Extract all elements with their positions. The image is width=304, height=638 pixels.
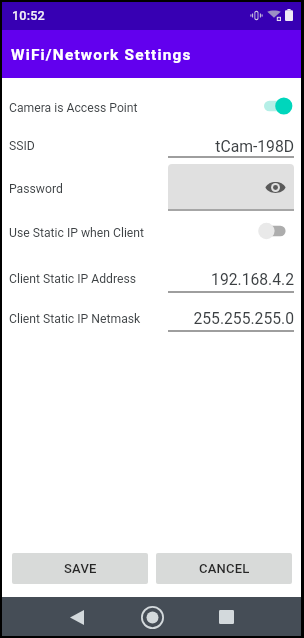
button[interactable]: Use Static IP when Client toggle (258, 219, 290, 243)
staticText: Use Static IP when Client (9, 226, 145, 240)
staticText: 255.255.255.0 (168, 309, 294, 327)
button[interactable]: CANCEL (156, 553, 292, 584)
staticText: CANCEL (199, 561, 250, 576)
button[interactable]: 192.168.4.2 (168, 270, 294, 288)
button[interactable]: 255.255.255.0 (168, 309, 294, 327)
button[interactable] (168, 164, 294, 209)
staticText: Camera is Access Point (9, 101, 138, 115)
button[interactable]: Use Static IP when Client (9, 226, 145, 240)
staticText: Client Static IP Address (9, 272, 137, 286)
staticText: Client Static IP Netmask (9, 312, 141, 326)
button[interactable]: Show password (264, 180, 286, 194)
staticText: tCam-198D (168, 137, 294, 155)
staticText: Password (9, 182, 63, 196)
button[interactable]: Password (9, 182, 63, 196)
other: Ringer vibrate (250, 10, 263, 21)
button[interactable]: tCam-198D (168, 137, 294, 155)
button[interactable]: Camera is Access Point (9, 101, 138, 115)
button[interactable]: Home (130, 598, 174, 636)
staticText: 10:52 (12, 8, 45, 23)
staticText: SAVE (64, 561, 97, 576)
staticText: WiFi/Network Settings (11, 46, 192, 64)
staticText: SSID (9, 139, 35, 153)
button[interactable]: Client Static IP Netmask (9, 312, 141, 326)
other: Battery (285, 9, 293, 21)
button[interactable]: Client Static IP Address (9, 272, 137, 286)
button[interactable]: SSID (9, 139, 35, 153)
other: Wi-Fi disconnected (267, 10, 281, 21)
button[interactable]: Camera is Access Point toggle (262, 94, 294, 118)
button[interactable]: Back (55, 598, 99, 636)
button[interactable]: Recent apps (204, 598, 248, 636)
staticText: 192.168.4.2 (168, 270, 294, 288)
button[interactable]: SAVE (12, 553, 148, 584)
